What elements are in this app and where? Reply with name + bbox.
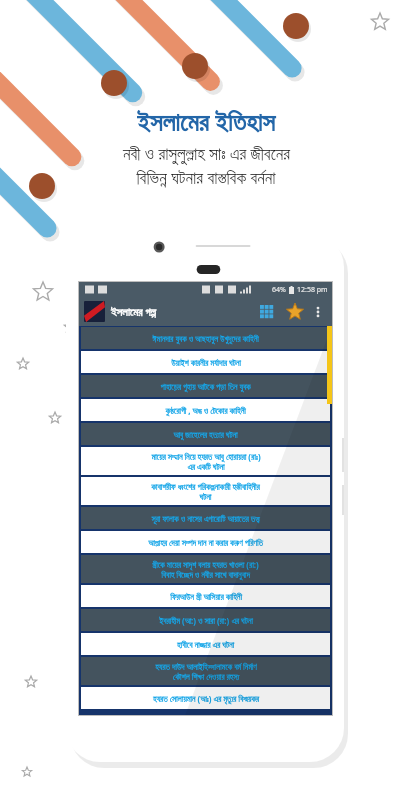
button[interactable]: কাবাশরীফ ধ্বংশের পরিকল্পনাকারী হস্তীবাহি… [81, 477, 330, 505]
staticText: বিভিন্ন ঘটনার বাস্তবিক বর্ননা [136, 166, 276, 189]
button[interactable]: পাহাড়ের গুহায় আটকে পড়া তিন যুবক [81, 375, 330, 397]
button[interactable]: ফিরআউন স্ত্রী আসিয়ার কাহিনী [81, 585, 330, 607]
staticText: আল্লাহর দেয়া সম্পদ দান না করার করুণ পরি… [148, 537, 263, 548]
button[interactable]: উয়াইশ কারনীর মর্যাদার ঘটনা [81, 351, 330, 373]
button[interactable]: সূরা ফালাক ও নাসের এগারোটি আয়াতের তত্ত্… [81, 507, 330, 529]
staticText: মায়ের সম্মান নিয়ে হযরত আবু হোরায়রা (র… [151, 451, 261, 472]
button[interactable]: ঈমানদার যুবক ও আছহাবুল উখুদুদের কাহিনী [81, 327, 330, 349]
staticText: ঈমানদার যুবক ও আছহাবুল উখুদুদের কাহিনী [152, 333, 259, 344]
staticText: পাহাড়ের গুহায় আটকে পড়া তিন যুবক [160, 381, 251, 392]
button[interactable]: আবু জাহেলের হত্যার ঘটনা [81, 423, 330, 445]
button[interactable]: স্ত্রীকে মায়ের সাদৃশ বলায় হযরত খাওলা (… [81, 555, 330, 583]
staticText: ইবরাহীম (আ:) ও সারা (রা:) এর ঘটনা [159, 615, 253, 626]
staticText: 64% [272, 285, 286, 295]
staticText: হাবীবে নাজ্জার এর ঘটনা [177, 639, 234, 650]
staticText: ইসলামের গল্প [111, 304, 156, 319]
staticText: নবী ও রাসুলুল্লাহ সাঃ এর জীবনের [123, 142, 290, 165]
button[interactable]: ইবরাহীম (আ:) ও সারা (রা:) এর ঘটনা [81, 609, 330, 631]
button[interactable]: কুষ্ঠরোগী , অন্ধ ও টেকোর কাহিনী [81, 399, 330, 421]
staticText: কুষ্ঠরোগী , অন্ধ ও টেকোর কাহিনী [165, 405, 246, 416]
staticText: সূরা ফালাক ও নাসের এগারোটি আয়াতের তত্ত্… [151, 513, 260, 524]
button[interactable]: Grid view [255, 300, 279, 324]
button[interactable]: মায়ের সম্মান নিয়ে হযরত আবু হোরায়রা (র… [81, 447, 330, 475]
staticText: হযরত দাউদ আলাইহিস্সালামকে বর্ম নির্মাণ ক… [155, 661, 257, 682]
staticText: আবু জাহেলের হত্যার ঘটনা [173, 429, 238, 440]
button[interactable]: হাবীবে নাজ্জার এর ঘটনা [81, 633, 330, 655]
staticText: স্ত্রীকে মায়ের সাদৃশ বলায় হযরত খাওলা (… [152, 559, 259, 580]
staticText: ইসলামের ইতিহাস [137, 104, 275, 138]
button[interactable]: আল্লাহর দেয়া সম্পদ দান না করার করুণ পরি… [81, 531, 330, 553]
staticText: ফিরআউন স্ত্রী আসিয়ার কাহিনী [170, 591, 242, 602]
button[interactable]: হযরত দাউদ আলাইহিস্সালামকে বর্ম নির্মাণ ক… [81, 657, 330, 685]
button[interactable]: Favourites [283, 300, 307, 324]
staticText: উয়াইশ কারনীর মর্যাদার ঘটনা [171, 357, 241, 368]
staticText: কাবাশরীফ ধ্বংশের পরিকল্পনাকারী হস্তীবাহি… [151, 481, 260, 501]
button[interactable]: More options [309, 303, 327, 321]
staticText: 12:58 pm [297, 285, 328, 295]
button[interactable]: হযরত সোলায়মান (আঃ) এর মৃত্যুর বিস্ময়কর [81, 687, 330, 709]
button[interactable]: App logo [84, 301, 105, 322]
staticText: হযরত সোলায়মান (আঃ) এর মৃত্যুর বিস্ময়কর [153, 693, 259, 704]
